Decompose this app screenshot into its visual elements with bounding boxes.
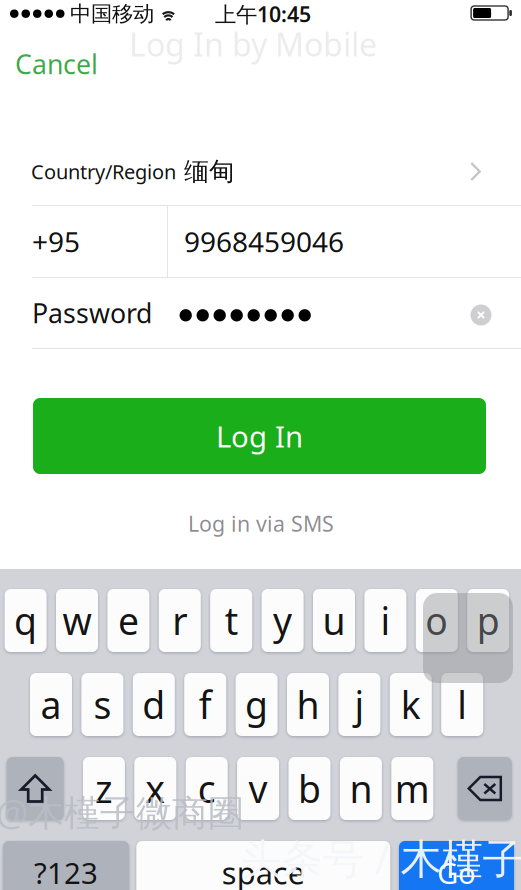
button[interactable]: c [186, 757, 228, 820]
staticText: a [40, 680, 61, 729]
staticText: z [95, 764, 113, 813]
button[interactable]: Log In [33, 398, 486, 474]
staticText: space [222, 852, 305, 890]
staticText: j [354, 680, 364, 729]
staticText: 9968459046 [184, 223, 344, 260]
staticText: w [62, 596, 91, 645]
staticText: 头条号 / 木槿子 [240, 831, 521, 885]
button[interactable]: g [236, 673, 278, 736]
staticText: g [245, 680, 268, 729]
staticText: ?123 [34, 853, 98, 890]
button[interactable]: y [262, 589, 304, 652]
staticText: 上午10:45 [215, 0, 311, 28]
button[interactable]: Go [399, 841, 514, 890]
staticText: f [199, 680, 212, 729]
staticText: o [425, 596, 448, 645]
button[interactable]: ?123 [3, 841, 129, 890]
button[interactable]: s [81, 673, 123, 736]
staticText: 缅甸 [184, 156, 234, 187]
button[interactable]: k [390, 673, 432, 736]
staticText: p [477, 596, 500, 645]
button[interactable]: q [5, 589, 47, 652]
button[interactable]: space [136, 841, 390, 890]
button[interactable]: z [83, 757, 125, 820]
button[interactable]: x [134, 757, 176, 820]
staticText: Log In [216, 416, 303, 455]
button[interactable]: m [391, 757, 433, 820]
staticText: i [380, 596, 390, 645]
button[interactable]: Country/Region [0, 138, 521, 205]
staticText: u [322, 596, 345, 645]
staticText: y [273, 596, 292, 645]
button[interactable]: Log in via SMS [171, 505, 351, 541]
button[interactable]: l [441, 673, 483, 736]
staticText: +95 [32, 223, 80, 260]
button[interactable]: b [288, 757, 330, 820]
staticText: @木槿子微商圈 [0, 788, 244, 836]
button[interactable]: v [237, 757, 279, 820]
staticText: c [198, 764, 216, 813]
button[interactable]: u [313, 589, 355, 652]
button[interactable]: o [416, 589, 458, 652]
staticText: n [349, 764, 372, 813]
button[interactable]: d [133, 673, 175, 736]
staticText: h [296, 680, 319, 729]
staticText: Log In by Mobile [129, 23, 377, 65]
button[interactable]: f [184, 673, 226, 736]
staticText: v [249, 764, 268, 813]
button[interactable]: Shift [7, 757, 64, 820]
staticText: q [14, 596, 37, 645]
staticText: Log in via SMS [188, 509, 334, 538]
button[interactable]: i [364, 589, 406, 652]
button[interactable]: r [159, 589, 201, 652]
staticText: Password [32, 295, 152, 331]
button[interactable]: n [340, 757, 382, 820]
button[interactable]: w [56, 589, 98, 652]
staticText: l [457, 680, 467, 729]
staticText: r [172, 596, 187, 645]
staticText: k [401, 680, 421, 729]
staticText: b [298, 764, 321, 813]
staticText: e [118, 596, 139, 645]
button[interactable]: h [287, 673, 329, 736]
button[interactable]: e [107, 589, 149, 652]
staticText: Go [437, 853, 476, 890]
staticText: m [395, 764, 430, 813]
staticText: Country/Region [31, 158, 176, 185]
button[interactable]: Cancel [15, 43, 119, 85]
button[interactable]: t [210, 589, 252, 652]
button[interactable]: j [338, 673, 380, 736]
staticText: d [142, 680, 165, 729]
button[interactable]: a [30, 673, 72, 736]
button[interactable]: Delete [458, 757, 512, 820]
staticText: Cancel [15, 46, 98, 82]
staticText: s [93, 680, 111, 729]
staticText: 中国移动 [70, 1, 154, 27]
staticText: t [225, 596, 238, 645]
staticText: x [145, 764, 165, 813]
button[interactable]: p [467, 589, 509, 652]
